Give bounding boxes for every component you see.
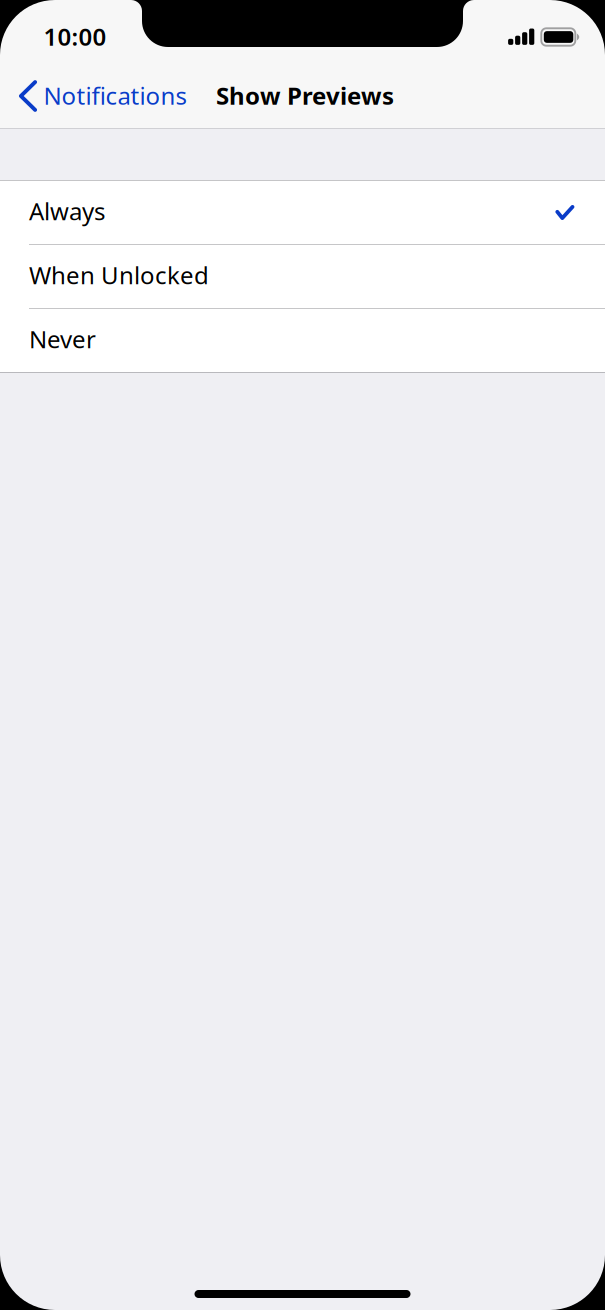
staticText: Always xyxy=(29,195,105,227)
button[interactable]: When Unlocked xyxy=(0,245,605,308)
staticText: Notifications xyxy=(44,80,187,111)
staticText: Never xyxy=(29,323,96,355)
staticText: Show Previews xyxy=(216,80,394,111)
button[interactable]: Never xyxy=(0,309,605,372)
button[interactable]: Always xyxy=(0,181,605,244)
button[interactable]: Notifications xyxy=(0,74,197,118)
staticText: When Unlocked xyxy=(29,259,209,291)
staticText: 10:00 xyxy=(43,21,106,52)
